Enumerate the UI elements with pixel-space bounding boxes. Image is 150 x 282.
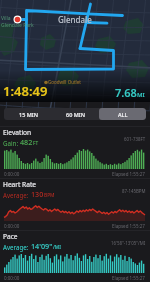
- staticText: 0:00:00: [4, 275, 20, 281]
- staticText: Glendale: [58, 14, 92, 25]
- staticText: 15 MIN: [19, 111, 38, 118]
- staticText: Average:: [3, 191, 31, 199]
- staticText: ALL: [118, 111, 128, 118]
- staticText: MI: [137, 91, 145, 99]
- staticText: Goodwill Outlet: [48, 79, 81, 85]
- staticText: 60 MIN: [66, 111, 85, 118]
- staticText: FT: [33, 140, 39, 147]
- staticText: 601-738FT: [124, 136, 146, 142]
- button[interactable]: 15 MIN: [4, 108, 52, 120]
- button[interactable]: Heart Rate: [0, 178, 150, 230]
- staticText: Pace: [3, 232, 18, 241]
- button[interactable]: Elevation: [0, 126, 150, 178]
- staticText: 16'58"-13'05"/MI: [111, 240, 146, 246]
- staticText: 7.68: [115, 85, 137, 100]
- staticText: Elapsed 1:55:27: [112, 275, 145, 281]
- staticText: Villa: [1, 15, 11, 22]
- staticText: Gain:: [3, 139, 20, 147]
- button[interactable]: Pace: [0, 230, 150, 282]
- staticText: 0:00:00: [4, 171, 20, 177]
- staticText: 14'09": [31, 241, 53, 251]
- staticText: BPM: [44, 192, 55, 199]
- staticText: Average:: [3, 243, 31, 251]
- staticText: Glendale Park: [1, 22, 34, 29]
- staticText: Elapsed 1:55:27: [112, 223, 145, 229]
- button[interactable]: 60 MIN: [52, 108, 99, 120]
- staticText: 87-145BPM: [122, 188, 146, 194]
- staticText: /MI: [53, 244, 61, 251]
- staticText: 482: [20, 137, 33, 147]
- button[interactable]: ALL: [99, 108, 146, 120]
- staticText: Elapsed 1:55:27: [112, 171, 145, 177]
- staticText: 130: [31, 189, 44, 199]
- staticText: Heart Rate: [3, 180, 37, 189]
- staticText: Elevation: [3, 128, 32, 137]
- staticText: 0:00:00: [4, 223, 20, 229]
- staticText: 1:48:49: [3, 82, 48, 100]
